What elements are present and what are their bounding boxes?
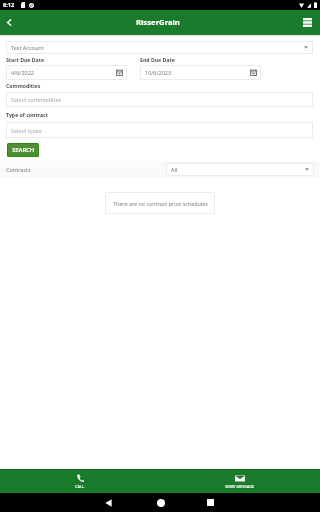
button[interactable]: SEND MESSAGE xyxy=(160,470,320,493)
button[interactable]: Test Account xyxy=(6,41,313,54)
button[interactable]: 4/6/2022 xyxy=(6,65,127,80)
button[interactable]: Menu xyxy=(298,10,316,35)
button[interactable]: CALL xyxy=(0,470,160,493)
staticText: Commodities xyxy=(6,82,41,89)
button[interactable]: Recents xyxy=(200,493,221,512)
staticText: Type of contract xyxy=(6,111,48,118)
button[interactable]: Select commodities xyxy=(6,92,313,107)
staticText: Select commodities xyxy=(11,96,62,103)
staticText: All xyxy=(171,166,305,173)
button[interactable]: 10/6/2023 xyxy=(140,65,261,80)
button[interactable]: Select types xyxy=(6,122,313,138)
staticText: 4/6/2022 xyxy=(11,69,116,76)
staticText: SEND MESSAGE xyxy=(225,484,255,489)
staticText: RisserGrain xyxy=(136,17,180,27)
button[interactable]: Home xyxy=(150,493,171,512)
staticText: End Due Date xyxy=(140,56,175,63)
staticText: 10/6/2023 xyxy=(145,69,250,76)
button[interactable]: SEARCH xyxy=(8,144,38,156)
staticText: Contracts xyxy=(6,166,31,173)
staticText: Start Due Date xyxy=(6,56,45,63)
staticText: Select types xyxy=(11,127,42,134)
button[interactable]: Back xyxy=(98,493,119,512)
button[interactable]: Back xyxy=(0,10,17,35)
staticText: There are no contract price schedules xyxy=(113,200,208,207)
staticText: 8:12 xyxy=(3,1,15,9)
button[interactable]: All xyxy=(166,163,314,176)
staticText: SEARCH xyxy=(12,146,35,154)
staticText: CALL xyxy=(75,484,85,489)
staticText: Test Account xyxy=(11,44,304,51)
